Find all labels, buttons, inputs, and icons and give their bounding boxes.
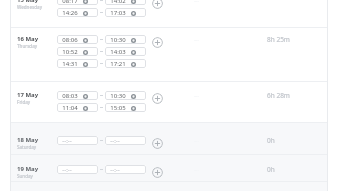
staticText: --:-- — [110, 166, 120, 174]
button[interactable]: 16 May — [11, 28, 328, 81]
staticText: 14:26 — [62, 9, 78, 17]
staticText: 14:03 — [110, 48, 126, 56]
staticText: 8h 25m — [267, 35, 290, 44]
button[interactable]: --:-- — [57, 165, 98, 174]
staticText: 19 May — [17, 165, 39, 173]
staticText: 17:03 — [110, 9, 126, 17]
staticText: 14:31 — [62, 60, 78, 68]
staticText: 10:30 — [110, 92, 126, 100]
button[interactable]: 15:05 — [105, 103, 146, 112]
button[interactable]: 14:02 — [105, 0, 146, 5]
button[interactable]: 14:03 — [105, 47, 146, 56]
staticText: 6h 28m — [267, 91, 290, 100]
staticText: 17 May — [17, 91, 39, 99]
staticText: --- — [194, 0, 199, 4]
button[interactable]: 17 May — [11, 82, 328, 122]
staticText: 08:17 — [62, 0, 78, 5]
staticText: 0h — [267, 165, 275, 174]
staticText: 18 May — [17, 136, 39, 144]
staticText: 11:04 — [62, 104, 78, 112]
button[interactable]: 15 May — [11, 0, 328, 27]
staticText: Saturday — [17, 144, 37, 150]
button[interactable]: Add time entry — [152, 37, 163, 48]
button[interactable]: 11:04 — [57, 103, 98, 112]
button[interactable]: 18 May — [11, 123, 328, 154]
staticText: 10:52 — [62, 48, 78, 56]
button[interactable]: 10:30 — [105, 35, 146, 44]
button[interactable]: Add time entry — [152, 167, 163, 178]
staticText: 08:03 — [62, 92, 78, 100]
staticText: 14:02 — [110, 0, 126, 5]
staticText: --:-- — [110, 137, 120, 145]
button[interactable]: Add time entry — [152, 138, 163, 149]
staticText: Friday — [17, 99, 31, 105]
staticText: 0h — [267, 136, 275, 145]
staticText: --:-- — [62, 137, 72, 145]
staticText: 15:05 — [110, 104, 126, 112]
button[interactable]: Add time entry — [152, 0, 163, 9]
button[interactable]: Add time entry — [152, 93, 163, 104]
staticText: Thursday — [17, 43, 38, 49]
staticText: 16 May — [17, 35, 39, 43]
button[interactable]: --:-- — [57, 136, 98, 145]
button[interactable]: 14:26 — [57, 8, 98, 17]
staticText: 15 May — [17, 0, 39, 4]
button[interactable]: 10:52 — [57, 47, 98, 56]
staticText: 08:06 — [62, 36, 78, 44]
staticText: 10:30 — [110, 36, 126, 44]
button[interactable]: 14:31 — [57, 59, 98, 68]
button[interactable]: 19 May — [11, 155, 328, 181]
button[interactable]: 08:06 — [57, 35, 98, 44]
button[interactable]: 10:30 — [105, 91, 146, 100]
button[interactable]: 08:17 — [57, 0, 98, 5]
button[interactable]: 17:21 — [105, 59, 146, 68]
button[interactable]: 08:03 — [57, 91, 98, 100]
button[interactable]: --:-- — [105, 165, 146, 174]
staticText: Wednesday — [17, 4, 42, 10]
button[interactable]: --:-- — [105, 136, 146, 145]
staticText: Sunday — [17, 173, 33, 179]
staticText: --:-- — [62, 166, 72, 174]
button[interactable]: 17:03 — [105, 8, 146, 17]
staticText: 17:21 — [110, 60, 126, 68]
